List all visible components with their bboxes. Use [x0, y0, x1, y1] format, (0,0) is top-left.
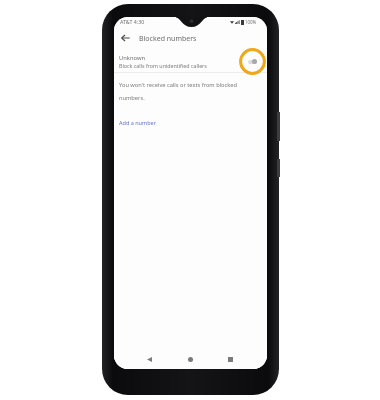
button[interactable]: Blocked numbers: [139, 34, 197, 44]
button[interactable]: Back: [143, 353, 155, 365]
staticText: Unknown: [119, 54, 146, 62]
staticText: AT&T 4:30: [120, 18, 145, 25]
button[interactable]: Unknown: [114, 48, 267, 74]
button[interactable]: Unknown callers toggle: [239, 48, 266, 75]
button[interactable]: Home: [184, 353, 196, 365]
button[interactable]: Recent apps: [224, 353, 236, 365]
staticText: Block calls from unidentified callers: [119, 62, 207, 69]
button[interactable]: Add a number: [119, 119, 156, 126]
staticText: Add a number: [119, 119, 156, 126]
staticText: 100%: [245, 19, 257, 25]
staticText: Blocked numbers: [139, 34, 197, 44]
button[interactable]: Back: [118, 31, 132, 45]
staticText: You won't receive calls or texts from bl…: [119, 81, 242, 102]
